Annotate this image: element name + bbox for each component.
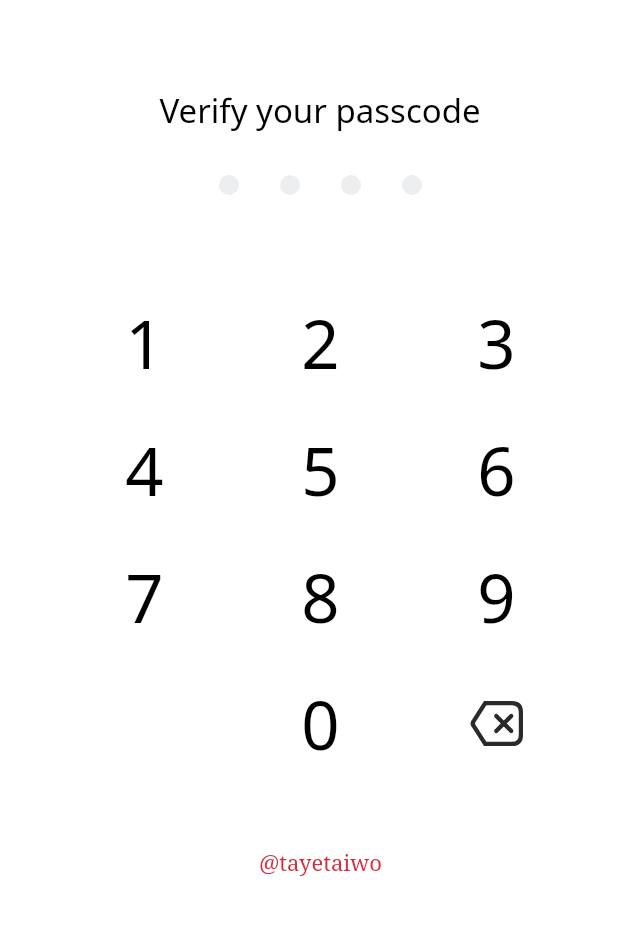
staticText: 9	[477, 551, 516, 642]
button[interactable]: 8	[232, 533, 408, 660]
button[interactable]: Backspace	[408, 660, 584, 787]
button[interactable]: 6	[408, 406, 584, 533]
staticText: @tayetaiwo	[259, 847, 382, 877]
staticText: 0	[301, 678, 340, 769]
button[interactable]: 9	[408, 533, 584, 660]
button[interactable]: 1	[56, 279, 232, 406]
staticText: Verify your passcode	[159, 88, 481, 133]
button[interactable]: 0	[232, 660, 408, 787]
button[interactable]: 2	[232, 279, 408, 406]
staticText: 8	[301, 551, 340, 642]
staticText: 3	[477, 297, 516, 388]
button[interactable]: 3	[408, 279, 584, 406]
button[interactable]: 7	[56, 533, 232, 660]
staticText: 7	[125, 551, 164, 642]
staticText: 2	[301, 297, 340, 388]
button[interactable]: 5	[232, 406, 408, 533]
staticText: 5	[301, 424, 340, 515]
staticText: 4	[125, 424, 164, 515]
staticText: 6	[477, 424, 516, 515]
button[interactable]: 4	[56, 406, 232, 533]
staticText: 1	[125, 297, 164, 388]
